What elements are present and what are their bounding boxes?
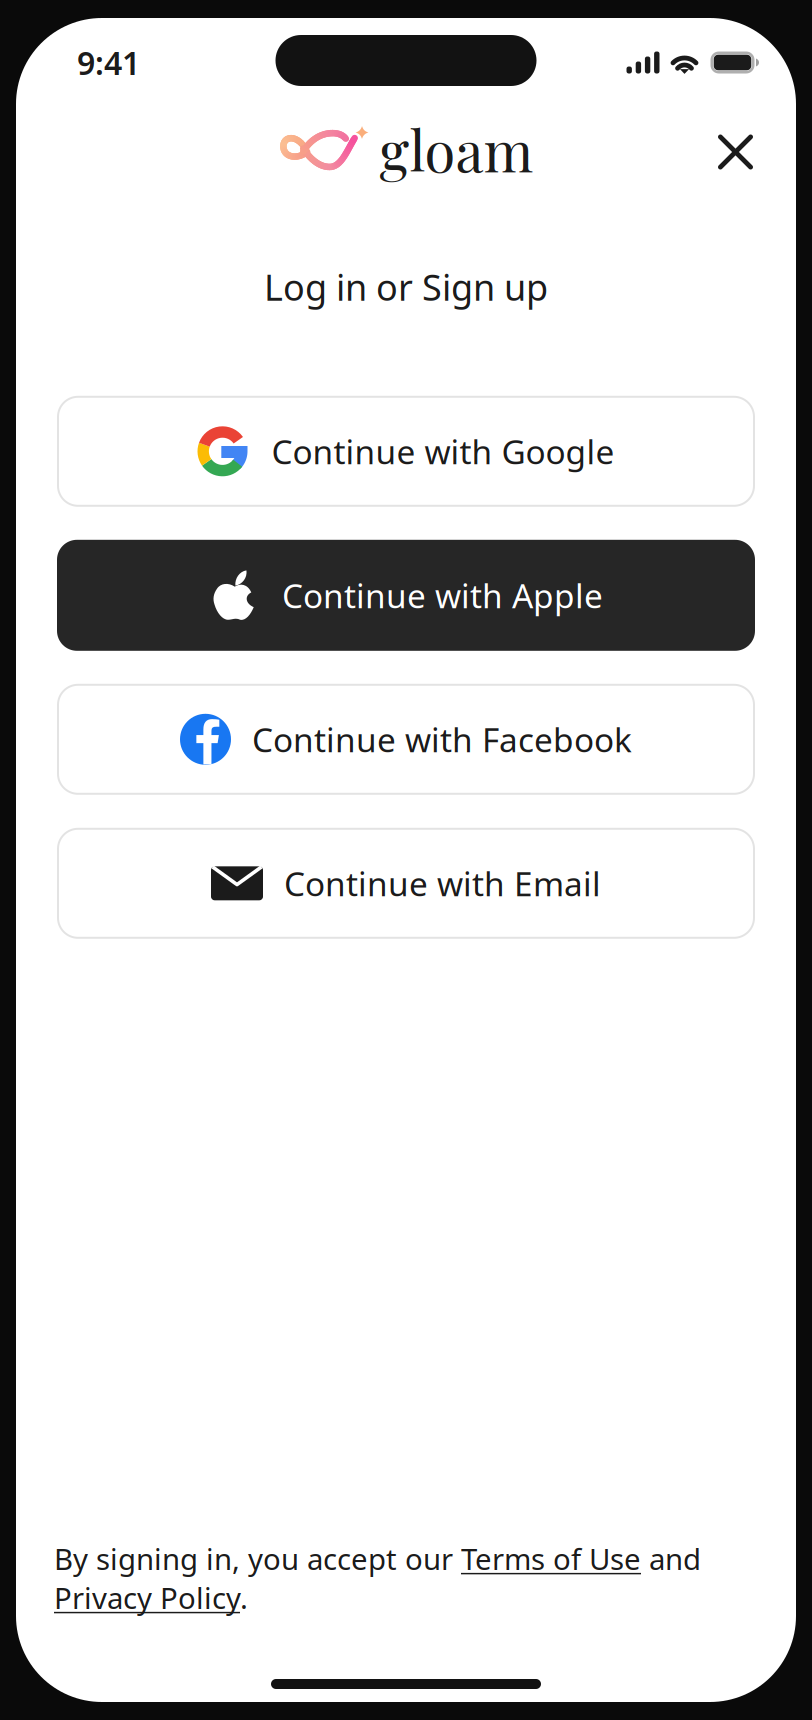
staticText: By signing in, you accept our Terms of U… xyxy=(54,1539,701,1617)
staticText: Log in or Sign up xyxy=(264,263,548,311)
button[interactable]: Close xyxy=(705,114,766,175)
button[interactable]: Continue with Google xyxy=(57,396,755,507)
staticText: Continue with Apple xyxy=(282,573,603,617)
staticText: Continue with Facebook xyxy=(252,717,632,761)
staticText: Continue with Email xyxy=(284,861,601,905)
staticText: Continue with Google xyxy=(271,429,614,473)
button[interactable]: Continue with Apple xyxy=(57,540,755,651)
staticText: gloam xyxy=(379,112,533,186)
button[interactable]: Continue with Facebook xyxy=(57,684,755,795)
staticText: 9:41 xyxy=(77,41,140,84)
button[interactable]: Continue with Email xyxy=(57,828,755,939)
